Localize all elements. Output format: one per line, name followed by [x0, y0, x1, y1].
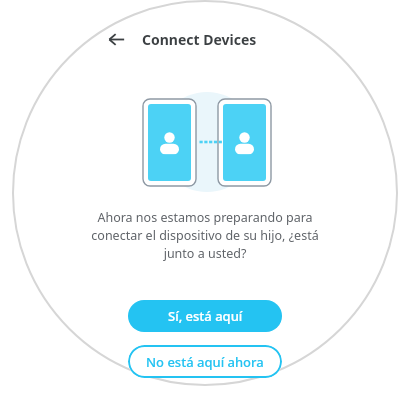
staticText: Ahora nos estamos preparando para conect…	[91, 209, 319, 262]
staticText: No está aquí ahora	[146, 353, 264, 371]
button[interactable]: Back	[98, 21, 134, 57]
button[interactable]: Sí, está aquí	[128, 300, 282, 332]
staticText: Sí, está aquí	[168, 307, 243, 325]
button[interactable]: No está aquí ahora	[128, 345, 282, 378]
staticText: Connect Devices	[142, 30, 257, 49]
